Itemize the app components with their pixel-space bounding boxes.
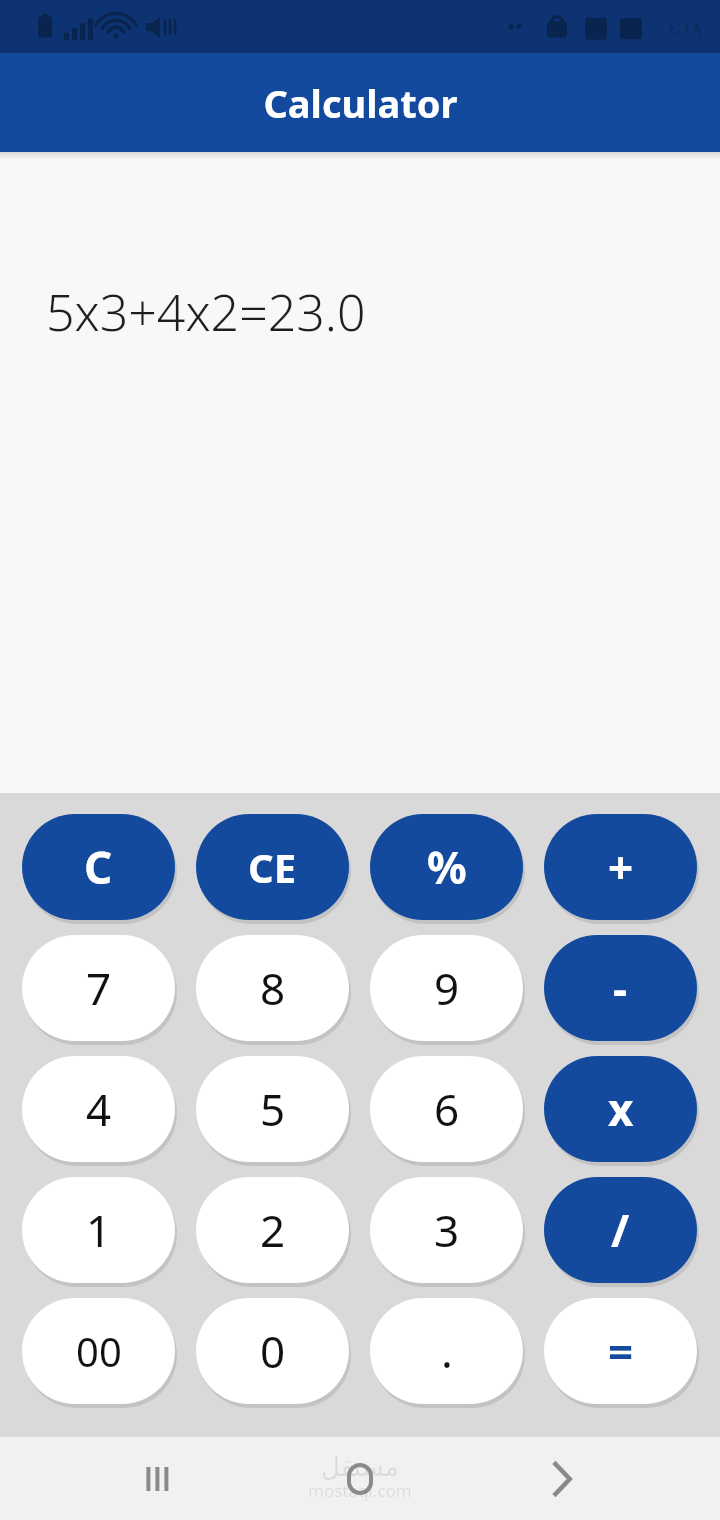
button[interactable]: . xyxy=(370,1298,523,1404)
button[interactable]: 0 xyxy=(196,1298,349,1404)
staticText: 5 xyxy=(260,1079,286,1139)
staticText: 6 xyxy=(434,1079,460,1139)
staticText: x xyxy=(608,1079,634,1139)
staticText: C xyxy=(84,837,113,897)
staticText: 1 xyxy=(86,1200,112,1260)
staticText: ١:١٨ xyxy=(666,14,702,40)
button[interactable]: Back xyxy=(524,1451,600,1507)
button[interactable]: 8 xyxy=(196,935,349,1041)
button[interactable]: 6 xyxy=(370,1056,523,1162)
button[interactable]: 00 xyxy=(22,1298,175,1404)
staticText: 3 xyxy=(434,1200,460,1260)
staticText: 9 xyxy=(434,958,460,1018)
button[interactable]: 9 xyxy=(370,935,523,1041)
staticText: 7 xyxy=(86,958,112,1018)
staticText: 00 xyxy=(76,1324,122,1378)
staticText: CE xyxy=(248,840,297,894)
button[interactable]: x xyxy=(544,1056,697,1162)
staticText: % xyxy=(427,837,467,897)
staticText: مستقل xyxy=(321,1452,399,1482)
staticText: 8 xyxy=(260,958,286,1018)
button[interactable]: 5 xyxy=(196,1056,349,1162)
staticText: + xyxy=(608,837,634,897)
button[interactable]: - xyxy=(544,935,697,1041)
button[interactable]: / xyxy=(544,1177,697,1283)
staticText: Calculator xyxy=(263,77,458,129)
button[interactable]: 4 xyxy=(22,1056,175,1162)
staticText: = xyxy=(608,1321,634,1381)
button[interactable]: 7 xyxy=(22,935,175,1041)
button[interactable]: C xyxy=(22,814,175,920)
button[interactable]: % xyxy=(370,814,523,920)
staticText: 4 xyxy=(86,1079,112,1139)
staticText: mostaql.com xyxy=(308,1479,412,1502)
staticText: 5x3+4x2=23.0 xyxy=(46,278,366,346)
staticText: - xyxy=(613,958,628,1018)
button[interactable]: = xyxy=(544,1298,697,1404)
staticText: 2 xyxy=(260,1200,286,1260)
button[interactable]: Home xyxy=(322,1451,398,1507)
button[interactable]: CE xyxy=(196,814,349,920)
staticText: . xyxy=(441,1321,453,1381)
button[interactable]: Recent apps xyxy=(120,1451,196,1507)
staticText: 0 xyxy=(260,1321,286,1381)
button[interactable]: 1 xyxy=(22,1177,175,1283)
button[interactable]: + xyxy=(544,814,697,920)
button[interactable]: 3 xyxy=(370,1177,523,1283)
staticText: / xyxy=(611,1200,630,1260)
button[interactable]: 2 xyxy=(196,1177,349,1283)
